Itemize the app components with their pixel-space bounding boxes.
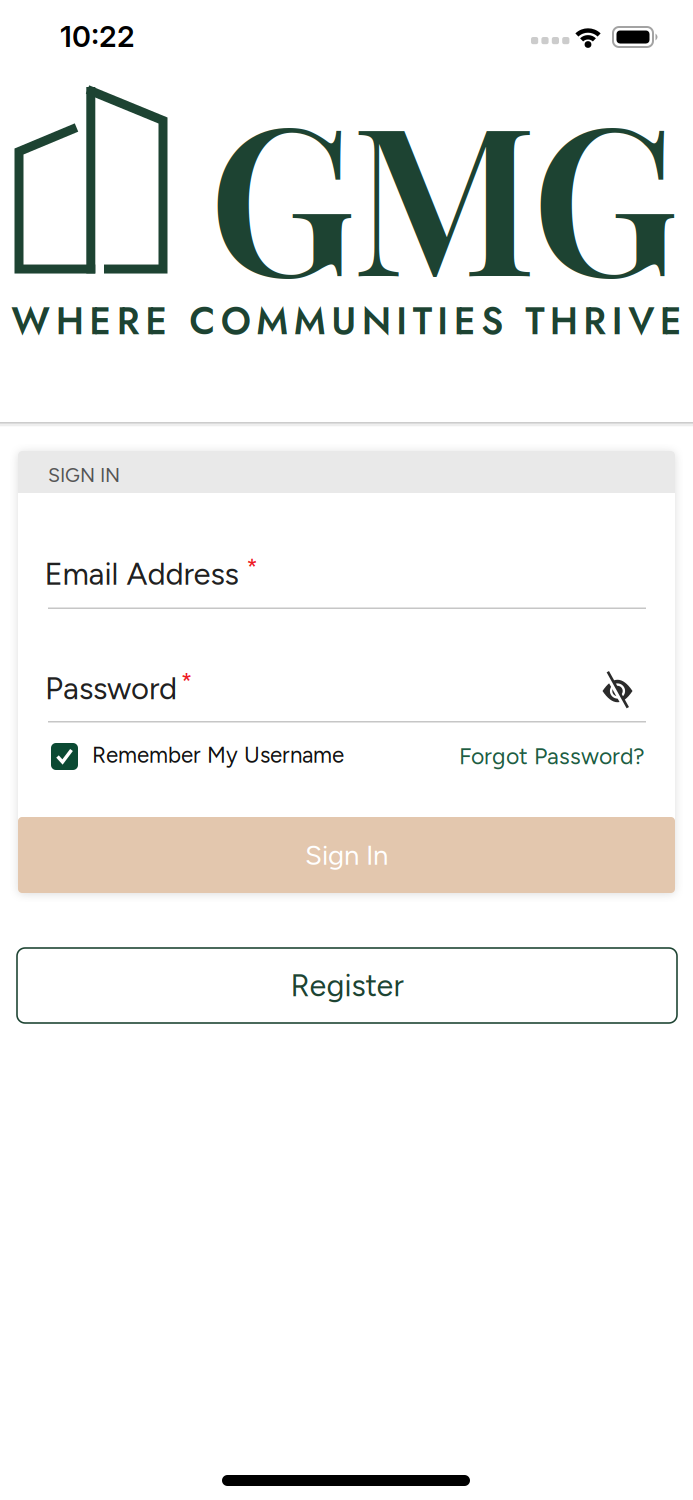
button[interactable]: Register xyxy=(17,948,677,1023)
staticText: Register xyxy=(290,967,403,1004)
staticText: WHERE COMMUNITIES THRIVE xyxy=(11,294,682,348)
staticText: * xyxy=(246,553,257,581)
staticText: GMG xyxy=(208,54,679,328)
button[interactable]: Password xyxy=(45,670,585,722)
button[interactable]: Forgot Password? xyxy=(459,742,645,770)
staticText: * xyxy=(181,667,192,695)
button[interactable]: Sign In xyxy=(18,817,675,893)
staticText: SIGN IN xyxy=(48,463,120,487)
button[interactable]: Remember My Username xyxy=(48,737,368,779)
staticText: Password xyxy=(45,670,177,707)
staticText: Email Address xyxy=(44,555,238,592)
staticText: Forgot Password? xyxy=(459,742,645,770)
staticText: Sign In xyxy=(305,838,388,871)
button[interactable]: Show password xyxy=(595,665,641,715)
button[interactable]: Email Address xyxy=(18,520,646,608)
staticText: 10:22 xyxy=(60,19,135,54)
staticText: Remember My Username xyxy=(92,741,344,768)
